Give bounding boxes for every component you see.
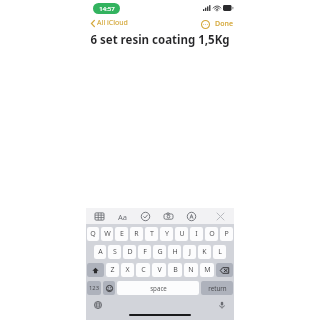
button[interactable]: More options [200,19,211,30]
button[interactable]: R [130,227,143,241]
button[interactable]: O [205,227,218,241]
staticText: Done [215,19,233,29]
staticText: B [173,265,178,275]
staticText: W [104,229,111,239]
staticText: M [204,265,211,275]
button[interactable]: 123 [87,281,101,295]
button[interactable]: Z [106,263,119,277]
button[interactable]: Done [214,18,234,30]
button[interactable]: Close [214,210,227,223]
button[interactable]: Backspace [216,263,233,277]
button[interactable]: Shift [87,263,104,277]
button[interactable]: All iCloud [90,17,129,29]
staticText: 6 set resin coating 1,5Kg [90,32,230,48]
staticText: R [134,229,139,239]
staticText: F [143,247,147,257]
staticText: A [98,247,103,257]
button[interactable]: J [183,245,196,259]
staticText: E [120,229,124,239]
button[interactable]: N [184,263,198,277]
button[interactable]: Emoji [103,281,115,295]
staticText: X [125,265,130,275]
staticText: P [224,229,229,239]
button[interactable]: X [121,263,134,277]
staticText: 14:57 [99,5,115,13]
button[interactable]: C [136,263,150,277]
button[interactable]: V [152,263,166,277]
staticText: D [127,247,133,257]
staticText: V [157,265,162,275]
staticText: 123 [89,284,99,292]
staticText: Aa [118,212,127,222]
button[interactable]: W [101,227,113,241]
button[interactable]: G [153,245,166,259]
button[interactable]: Text format [116,210,129,223]
staticText: Q [90,229,96,239]
button[interactable]: T [145,227,158,241]
button[interactable]: M [200,263,214,277]
button[interactable]: K [198,245,211,259]
button[interactable]: Change keyboard [92,299,104,311]
staticText: All iCloud [97,18,128,28]
staticText: L [218,247,222,257]
button[interactable]: U [175,227,188,241]
staticText: H [172,247,178,257]
staticText: T [150,229,154,239]
button[interactable]: H [168,245,181,259]
button[interactable]: L [213,245,226,259]
staticText: Z [110,265,115,275]
button[interactable]: Y [160,227,173,241]
staticText: O [209,229,215,239]
button[interactable]: B [168,263,182,277]
staticText: N [188,265,194,275]
staticText: K [202,247,207,257]
button[interactable]: Camera [162,210,175,223]
button[interactable]: S [108,245,121,259]
button[interactable]: I [190,227,203,241]
staticText: return [208,284,227,292]
button[interactable]: P [220,227,233,241]
button[interactable]: Dictation [216,299,228,311]
staticText: J [189,247,191,257]
button[interactable]: F [138,245,151,259]
button[interactable]: A [94,245,106,259]
button[interactable]: E [115,227,128,241]
button[interactable]: Checklist [139,210,152,223]
button[interactable]: space [117,281,199,295]
button[interactable]: D [123,245,136,259]
button[interactable]: Markup [185,210,198,223]
staticText: I [195,229,198,239]
staticText: S [113,247,117,257]
staticText: space [150,284,167,292]
staticText: Y [165,229,169,239]
button[interactable]: return [201,281,233,295]
staticText: C [141,265,146,275]
staticText: U [179,229,185,239]
button[interactable]: Q [87,227,99,241]
button[interactable]: Table [93,210,106,223]
staticText: G [157,247,163,257]
